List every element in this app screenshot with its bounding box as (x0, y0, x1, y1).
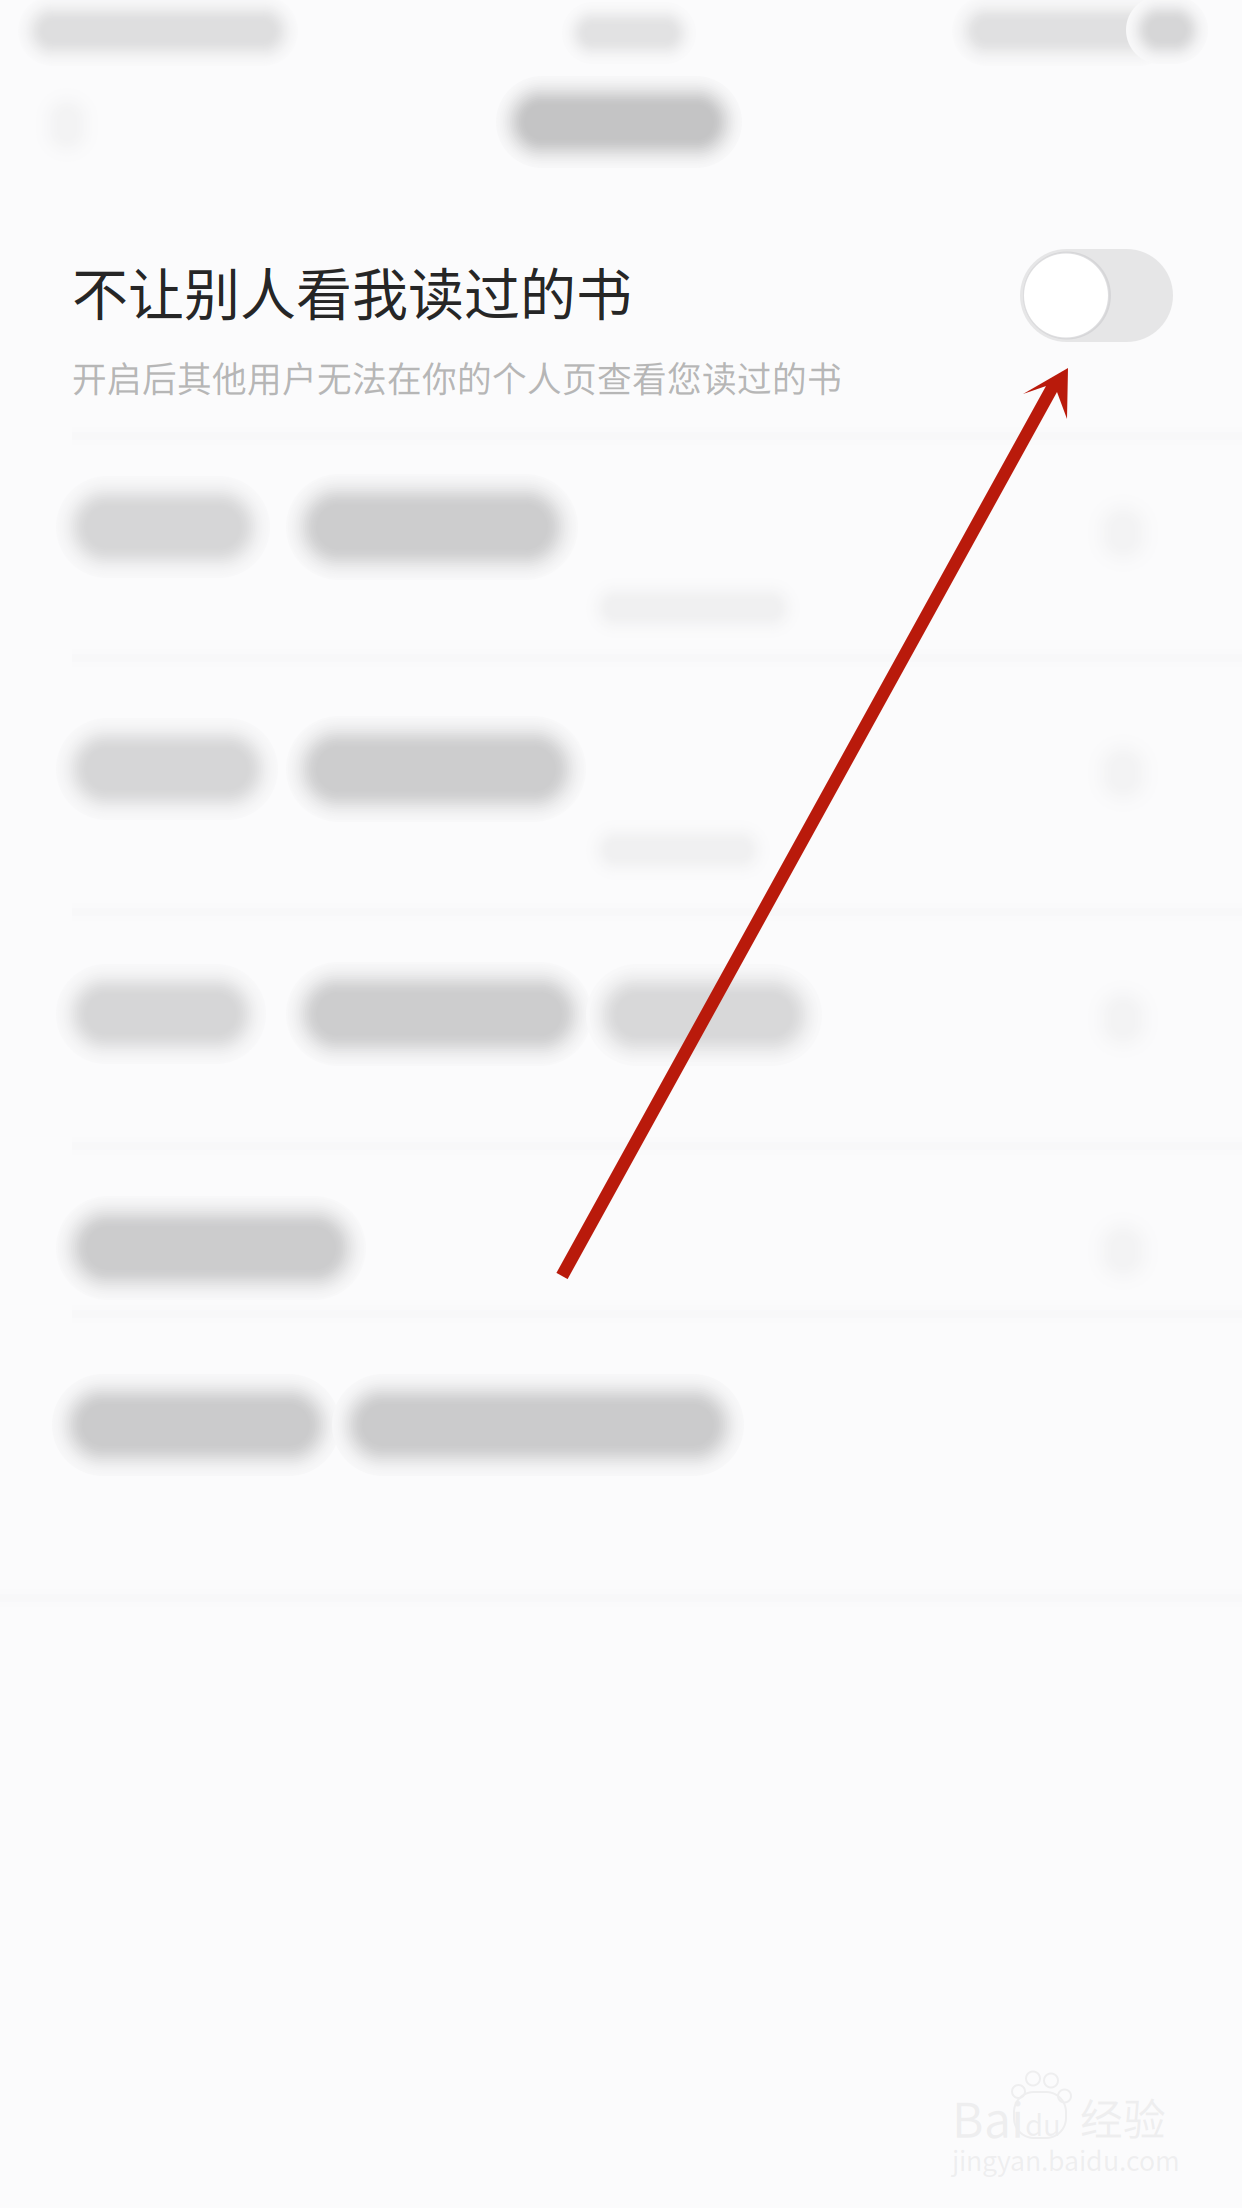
staticText: du (1025, 2102, 1061, 2144)
staticText: Bai (952, 2082, 1024, 2151)
staticText: 经验 (1080, 2086, 1166, 2148)
staticText: 不让别人看我读过的书 (72, 250, 632, 331)
button[interactable]: 设置项 (0, 0, 1158, 880)
button[interactable]: 设置项 (0, 0, 1158, 638)
button[interactable]: 设置项 (0, 0, 1158, 1300)
button[interactable]: 不让别人看我读过的书 (0, 0, 1173, 402)
staticText: jingyan.baidu.com (952, 2140, 1180, 2179)
staticText: 开启后其他用户无法在你的个人页查看您读过的书 (72, 352, 842, 402)
button[interactable]: 返回 (0, 0, 98, 162)
button[interactable]: 设置项 (0, 0, 744, 1476)
button[interactable]: 设置项 (0, 0, 1158, 1066)
